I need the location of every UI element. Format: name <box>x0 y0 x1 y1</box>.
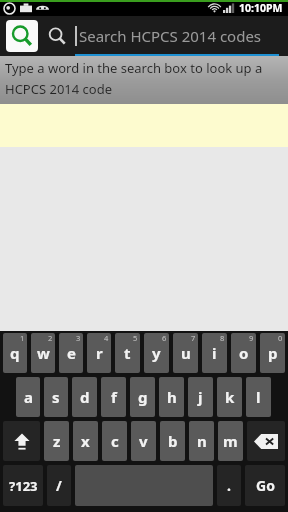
button[interactable]: l <box>246 377 271 417</box>
button[interactable]: g <box>130 377 155 417</box>
staticText: u <box>181 343 191 363</box>
staticText: 3 <box>76 333 81 343</box>
staticText: 0 <box>278 333 283 343</box>
button[interactable]: d <box>72 377 97 417</box>
staticText: j <box>198 387 203 407</box>
button[interactable]: v <box>131 421 156 461</box>
button[interactable]: App icon <box>6 20 38 52</box>
button[interactable]: Backspace <box>247 421 285 461</box>
button[interactable]: ?123 <box>3 465 43 506</box>
staticText: 8 <box>220 333 225 343</box>
staticText: ?123 <box>9 477 38 495</box>
staticText: . <box>227 476 231 495</box>
staticText: 2 <box>48 333 53 343</box>
button[interactable]: i <box>202 333 227 373</box>
button[interactable]: Shift <box>3 421 40 461</box>
staticText: o <box>239 343 249 363</box>
staticText: Search HCPCS 2014 codes <box>79 26 262 46</box>
staticText: / <box>56 476 62 495</box>
staticText: t <box>124 343 131 363</box>
button[interactable]: b <box>160 421 185 461</box>
button[interactable]: k <box>217 377 242 417</box>
staticText: Go <box>256 476 275 495</box>
staticText: p <box>268 343 278 363</box>
staticText: l <box>256 387 261 407</box>
staticText: 9 <box>249 333 254 343</box>
button[interactable]: / <box>47 465 71 506</box>
staticText: 5 <box>133 333 138 343</box>
staticText: 1 <box>20 333 25 343</box>
staticText: d <box>80 387 90 407</box>
staticText: b <box>168 431 178 451</box>
staticText: q <box>10 343 20 363</box>
button[interactable]: Search HCPCS 2014 codes <box>75 16 283 56</box>
staticText: g <box>138 387 148 407</box>
staticText: x <box>81 431 90 451</box>
button[interactable]: h <box>159 377 184 417</box>
button[interactable]: z <box>44 421 69 461</box>
button[interactable]: j <box>188 377 213 417</box>
button[interactable]: s <box>44 377 68 417</box>
button[interactable]: a <box>16 377 40 417</box>
button[interactable]: . <box>217 465 241 506</box>
button[interactable]: n <box>189 421 214 461</box>
button[interactable]: m <box>218 421 243 461</box>
button[interactable]: q <box>3 333 27 373</box>
button[interactable]: u <box>173 333 198 373</box>
staticText: c <box>111 431 119 451</box>
staticText: a <box>24 387 33 407</box>
button[interactable]: x <box>73 421 98 461</box>
staticText: s <box>52 387 60 407</box>
staticText: 6 <box>162 333 167 343</box>
other: Search <box>48 27 67 46</box>
staticText: w <box>37 343 50 363</box>
button[interactable]: t <box>115 333 140 373</box>
staticText: z <box>53 431 61 451</box>
staticText: 7 <box>191 333 196 343</box>
staticText: Type a word in the search box to look up… <box>5 59 263 77</box>
staticText: HCPCS 2014 code <box>5 80 113 98</box>
staticText: f <box>111 387 117 407</box>
staticText: y <box>152 343 161 363</box>
staticText: v <box>139 431 148 451</box>
button[interactable]: f <box>101 377 126 417</box>
button[interactable]: w <box>31 333 55 373</box>
staticText: n <box>197 431 207 451</box>
button[interactable]: y <box>144 333 169 373</box>
staticText: e <box>67 343 76 363</box>
button[interactable]: p <box>260 333 285 373</box>
staticText: i <box>212 343 217 363</box>
staticText: k <box>225 387 235 407</box>
button[interactable]: o <box>231 333 256 373</box>
staticText: r <box>96 343 103 363</box>
button[interactable]: e <box>59 333 83 373</box>
staticText: m <box>223 431 238 451</box>
staticText: 4 <box>104 333 109 343</box>
button[interactable]: c <box>102 421 127 461</box>
button[interactable]: r <box>87 333 111 373</box>
staticText: h <box>167 387 177 407</box>
button[interactable]: Go <box>245 465 285 506</box>
staticText: 10:10PM <box>239 1 283 15</box>
